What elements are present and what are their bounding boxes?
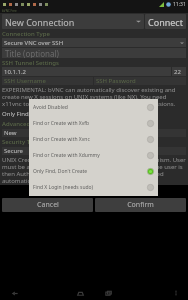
staticText: Avoid Disabled [33, 104, 147, 111]
button[interactable]: Only Find, Don't Create [29, 163, 158, 179]
button[interactable]: More options [170, 287, 182, 299]
staticText: 22 [174, 68, 181, 76]
staticText: SSH Tunnel Settings [2, 59, 186, 67]
staticText: SSH Password [96, 77, 136, 85]
button[interactable]: Secure [2, 147, 186, 155]
button[interactable]: New Connection [2, 14, 144, 29]
staticText: 10.1.1.2 [4, 68, 26, 76]
button[interactable]: Title (optional) [2, 48, 186, 58]
button[interactable]: Desktop [94, 129, 186, 137]
button[interactable]: Home [74, 287, 86, 299]
button[interactable]: SSH Password [94, 77, 186, 85]
staticText: Cancel [37, 200, 59, 210]
button[interactable]: Cancel [2, 198, 93, 212]
staticText: SSH Username [4, 77, 46, 85]
button[interactable]: 10.1.1.2 [2, 67, 171, 76]
button[interactable]: 22 [172, 67, 186, 76]
button[interactable]: Recent apps [102, 287, 114, 299]
button[interactable]: Find or Create with Xvfb [29, 115, 158, 131]
staticText: Only Find, Don't Create [33, 168, 147, 175]
staticText: Secure VNC over SSH [4, 39, 64, 47]
staticText: bVNC Free [2, 9, 17, 13]
staticText: EXPERIMENTAL: bVNC can automatically dis… [2, 86, 186, 108]
staticText: Find or Create with Xvfb [33, 120, 147, 127]
staticText: Find X Login (needs sudo) [33, 184, 147, 191]
staticText: Title (optional) [5, 48, 59, 58]
staticText: Secure [4, 147, 24, 155]
button[interactable]: Avoid Disabled [29, 99, 158, 115]
button[interactable]: Confirm [95, 198, 186, 212]
button[interactable]: Find or Create with Xvnc [29, 131, 158, 147]
staticText: UNIX Credentials instead of the built-in… [2, 156, 186, 185]
staticText: Find or Create with Xdummy [33, 152, 147, 159]
staticText: Find or Create with Xvnc [33, 136, 147, 143]
button[interactable]: Connect [145, 14, 186, 29]
staticText: Confirm [127, 200, 154, 210]
button[interactable]: Find X Login (needs sudo) [29, 179, 158, 195]
staticText: Only Find, Don't [2, 110, 47, 118]
button[interactable]: Secure VNC over SSH [2, 38, 186, 47]
staticText: Connect [148, 16, 183, 28]
staticText: 11:31 [173, 1, 186, 8]
staticText: Advanced Settings [2, 120, 186, 128]
button[interactable]: SSH Username [2, 77, 93, 85]
button[interactable]: Find or Create with Xdummy [29, 147, 158, 163]
staticText: New Connection [5, 16, 75, 28]
staticText: New [4, 129, 17, 137]
staticText: Security Type [2, 138, 186, 146]
staticText: Connection Type [2, 30, 186, 38]
button[interactable]: Back [8, 287, 20, 299]
button[interactable]: New [2, 129, 93, 137]
